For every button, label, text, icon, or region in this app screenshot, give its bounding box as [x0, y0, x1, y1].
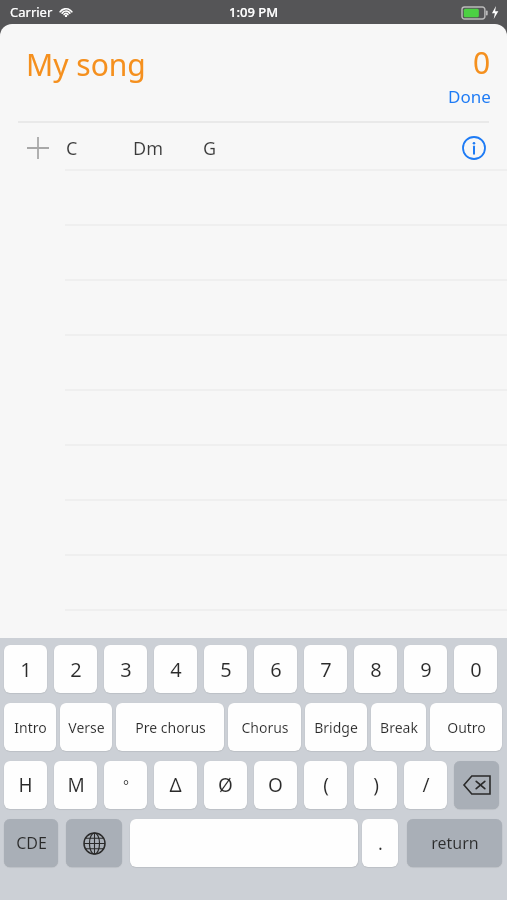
button[interactable]: 8 — [354, 645, 397, 693]
button[interactable]: My song — [26, 44, 146, 85]
button[interactable]: Chorus — [228, 703, 301, 751]
staticText: return — [431, 832, 479, 854]
staticText: Bridge — [314, 718, 358, 737]
staticText: Verse — [68, 718, 105, 737]
staticText: Carrier — [10, 3, 53, 21]
button[interactable]: Break — [371, 703, 426, 751]
staticText: 3 — [120, 656, 132, 683]
button[interactable]: 4 — [154, 645, 197, 693]
button[interactable]: 1 — [4, 645, 47, 693]
staticText: 4 — [170, 656, 182, 683]
button[interactable]: Dm — [133, 136, 163, 161]
staticText: 1:09 PM — [229, 3, 279, 21]
staticText: M — [67, 772, 85, 798]
staticText: . — [378, 831, 383, 856]
button[interactable]: 5 — [204, 645, 247, 693]
button[interactable]: . — [362, 819, 398, 867]
button[interactable]: 7 — [304, 645, 347, 693]
button[interactable]: Change keyboard — [66, 819, 122, 867]
staticText: Pre chorus — [135, 718, 206, 737]
button[interactable]: O — [254, 761, 297, 809]
button[interactable]: Add chord — [24, 134, 52, 162]
button[interactable]: return — [407, 819, 502, 867]
staticText: 2 — [70, 656, 82, 683]
staticText: Δ — [169, 772, 182, 798]
staticText: Break — [380, 718, 418, 737]
button[interactable]: 9 — [404, 645, 447, 693]
staticText: 7 — [320, 656, 332, 683]
button[interactable]: 3 — [104, 645, 147, 693]
button[interactable]: ( — [304, 761, 347, 809]
button[interactable]: M — [54, 761, 97, 809]
button[interactable]: G — [203, 136, 217, 161]
staticText: Ø — [218, 772, 233, 798]
button[interactable]: C — [66, 136, 78, 161]
staticText: ) — [373, 772, 379, 798]
button[interactable]: Verse — [60, 703, 112, 751]
staticText: 5 — [220, 656, 232, 683]
button[interactable]: / — [404, 761, 447, 809]
staticText: Chorus — [241, 718, 289, 737]
staticText: Intro — [14, 718, 47, 737]
staticText: O — [268, 772, 283, 798]
button[interactable]: Info — [459, 133, 489, 163]
button[interactable]: Intro — [4, 703, 56, 751]
button[interactable]: Bridge — [305, 703, 367, 751]
staticText: 9 — [420, 656, 432, 683]
button[interactable]: Δ — [154, 761, 197, 809]
button[interactable]: Backspace — [454, 761, 499, 809]
staticText: 0 — [473, 42, 491, 83]
staticText: CDE — [16, 832, 47, 854]
button[interactable]: Pre chorus — [116, 703, 224, 751]
staticText: ° — [123, 776, 129, 795]
button[interactable]: 0 — [454, 645, 497, 693]
staticText: 8 — [370, 656, 382, 683]
button[interactable]: ° — [104, 761, 147, 809]
button[interactable]: ) — [354, 761, 397, 809]
staticText: / — [422, 772, 430, 798]
staticText: 1 — [20, 656, 32, 683]
button[interactable]: CDE — [4, 819, 58, 867]
button[interactable]: 2 — [54, 645, 97, 693]
button[interactable]: Outro — [430, 703, 502, 751]
button[interactable]: H — [4, 761, 47, 809]
staticText: H — [18, 772, 33, 798]
staticText: 0 — [470, 656, 482, 683]
button[interactable]: 6 — [254, 645, 297, 693]
staticText: Outro — [447, 718, 486, 737]
staticText: ( — [323, 772, 329, 798]
button[interactable]: Ø — [204, 761, 247, 809]
staticText: 6 — [270, 656, 282, 683]
button[interactable]: Done — [448, 85, 491, 108]
